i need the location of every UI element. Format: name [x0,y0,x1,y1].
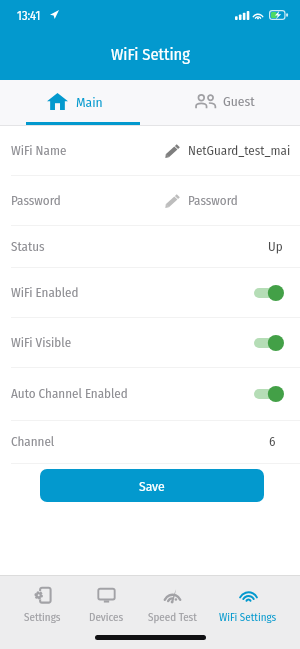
button[interactable]: WiFi Settings [210,576,286,625]
button[interactable]: WiFi Visible [0,318,300,368]
button[interactable]: Guest [150,80,300,122]
staticText: Devices [89,611,124,624]
staticText: Channel [11,434,55,450]
button[interactable]: Password [0,176,300,226]
staticText: 6 [269,434,276,450]
button[interactable]: Status [0,226,300,268]
staticText: WiFi Name [11,143,67,159]
button[interactable]: WiFi Name [0,126,300,176]
button[interactable]: Save [40,469,264,502]
staticText: WiFi Visible [11,335,72,351]
button[interactable]: WiFi Enabled [0,268,300,318]
staticText: WiFi Setting [111,45,190,65]
button[interactable]: Auto Channel Enabled [0,368,300,421]
staticText: Main [76,94,103,110]
staticText: Settings [24,611,61,624]
staticText: Status [11,239,45,255]
staticText: Guest [223,93,255,109]
staticText: WiFi Settings [219,611,277,624]
staticText: Auto Channel Enabled [11,386,128,402]
staticText: WiFi Enabled [11,285,79,301]
staticText: Up [268,239,283,255]
button[interactable]: Main [0,80,150,122]
staticText: Password [11,193,61,209]
button[interactable]: Devices [68,576,144,625]
button[interactable]: Speed Test [134,576,210,625]
staticText: Save [139,478,165,494]
staticText: Speed Test [148,611,197,624]
staticText: NetGuard_test_mai [188,143,291,159]
button[interactable]: Channel [0,421,300,464]
button[interactable]: Settings [4,576,80,625]
staticText: 13:41 [17,8,41,23]
staticText: Password [188,193,238,209]
